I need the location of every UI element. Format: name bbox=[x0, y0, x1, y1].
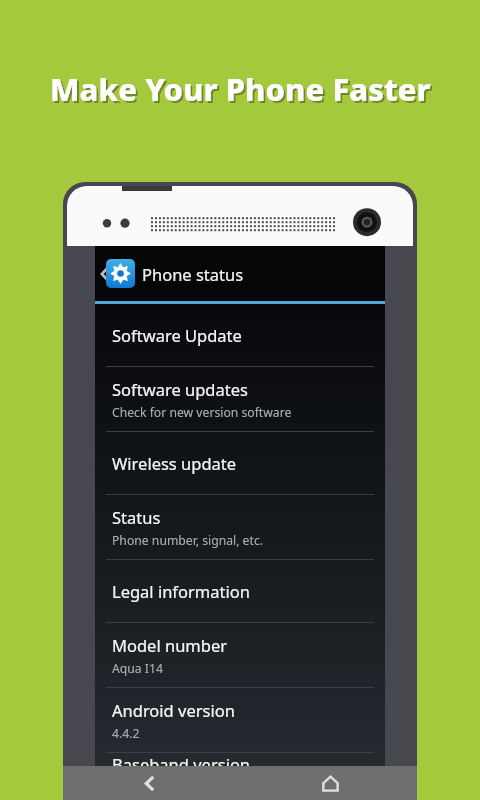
staticText: Phone number, signal, etc. bbox=[112, 532, 264, 549]
button[interactable]: Back bbox=[95, 246, 385, 301]
staticText: Model number bbox=[112, 634, 228, 656]
other: Back bbox=[97, 263, 113, 285]
button[interactable]: Software Update bbox=[95, 304, 385, 366]
button[interactable]: Status bbox=[95, 495, 385, 559]
staticText: Software updates bbox=[112, 378, 248, 400]
staticText: Aqua I14 bbox=[112, 660, 163, 677]
staticText: Android version bbox=[112, 699, 235, 721]
staticText: Legal information bbox=[112, 580, 250, 602]
staticText: Make Your Phone Faster bbox=[50, 68, 431, 110]
button[interactable]: Model number bbox=[95, 623, 385, 687]
staticText: Software Update bbox=[112, 324, 242, 346]
staticText: 4.4.2 bbox=[112, 725, 140, 742]
button[interactable]: Legal information bbox=[95, 560, 385, 622]
staticText: Make Your Phone Faster bbox=[52, 70, 433, 112]
staticText: Phone status bbox=[142, 263, 244, 285]
button[interactable]: Back bbox=[142, 774, 157, 793]
staticText: Baseband version bbox=[112, 753, 251, 766]
button[interactable]: Software updates bbox=[95, 367, 385, 431]
button[interactable]: Android version bbox=[95, 688, 385, 752]
button[interactable]: Baseband version bbox=[95, 753, 385, 766]
staticText: Status bbox=[112, 506, 161, 528]
button[interactable]: Wireless update bbox=[95, 432, 385, 494]
staticText: Check for new version software bbox=[112, 404, 292, 421]
button[interactable]: Home bbox=[322, 775, 339, 792]
staticText: Wireless update bbox=[112, 452, 237, 474]
